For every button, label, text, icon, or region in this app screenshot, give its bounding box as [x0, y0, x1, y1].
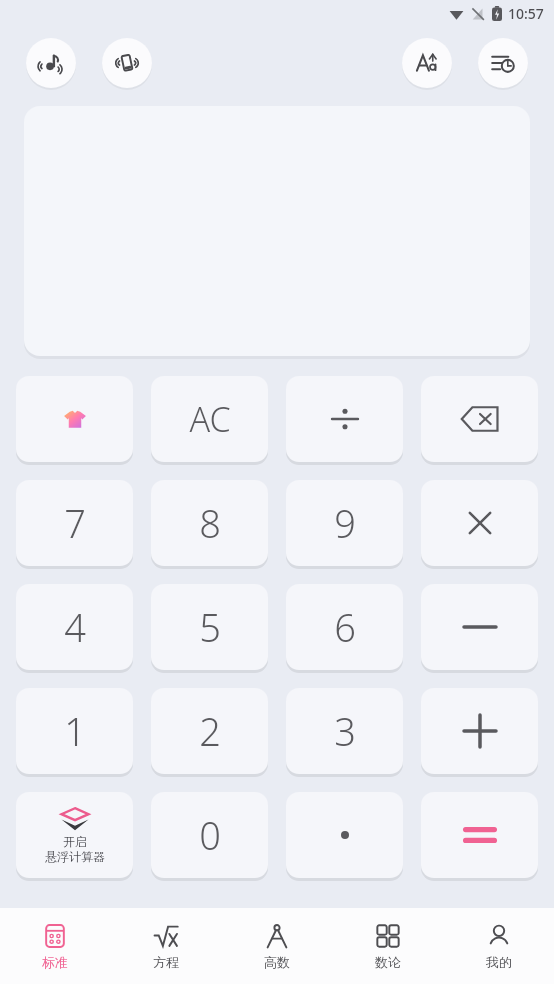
- staticText: 方程: [153, 954, 179, 970]
- staticText: 标准: [42, 954, 68, 970]
- button[interactable]: Multiply: [421, 480, 538, 566]
- staticText: AC: [189, 396, 231, 442]
- staticText: 5: [199, 601, 221, 653]
- button[interactable]: Backspace: [421, 376, 538, 462]
- button[interactable]: 7: [16, 480, 133, 566]
- staticText: 8: [199, 497, 221, 549]
- button[interactable]: Divide: [286, 376, 403, 462]
- button[interactable]: 3: [286, 688, 403, 774]
- button[interactable]: Decimal point: [286, 792, 403, 878]
- button[interactable]: Theme: [16, 376, 133, 462]
- button[interactable]: 6: [286, 584, 403, 670]
- button[interactable]: 5: [151, 584, 268, 670]
- staticText: 4: [64, 601, 86, 653]
- button[interactable]: 高数: [221, 908, 332, 984]
- staticText: 0: [199, 809, 221, 861]
- staticText: 悬浮计算器: [45, 849, 105, 864]
- button[interactable]: 9: [286, 480, 403, 566]
- button[interactable]: Plus: [421, 688, 538, 774]
- button[interactable]: Vibrate: [102, 38, 152, 88]
- staticText: 高数: [264, 954, 290, 970]
- button[interactable]: 8: [151, 480, 268, 566]
- button[interactable]: 1: [16, 688, 133, 774]
- button[interactable]: Equals: [421, 792, 538, 878]
- staticText: 7: [64, 497, 86, 549]
- staticText: 10:57: [508, 4, 544, 23]
- button[interactable]: 数论: [332, 908, 443, 984]
- button[interactable]: 0: [151, 792, 268, 878]
- button[interactable]: AC: [151, 376, 268, 462]
- button[interactable]: 4: [16, 584, 133, 670]
- button[interactable]: Sound: [26, 38, 76, 88]
- button[interactable]: History: [478, 38, 528, 88]
- staticText: 1: [64, 705, 86, 757]
- button[interactable]: 2: [151, 688, 268, 774]
- staticText: 我的: [486, 954, 512, 970]
- button[interactable]: Font size: [402, 38, 452, 88]
- button[interactable]: 方程: [110, 908, 221, 984]
- button[interactable]: 标准: [0, 908, 110, 984]
- button[interactable]: 我的: [443, 908, 554, 984]
- staticText: 9: [334, 497, 356, 549]
- staticText: 2: [199, 705, 221, 757]
- staticText: 数论: [375, 954, 401, 970]
- button[interactable]: Minus: [421, 584, 538, 670]
- staticText: 6: [334, 601, 356, 653]
- button[interactable]: Open floating calculator: [16, 792, 133, 878]
- staticText: 开启: [63, 834, 87, 849]
- staticText: 3: [334, 705, 356, 757]
